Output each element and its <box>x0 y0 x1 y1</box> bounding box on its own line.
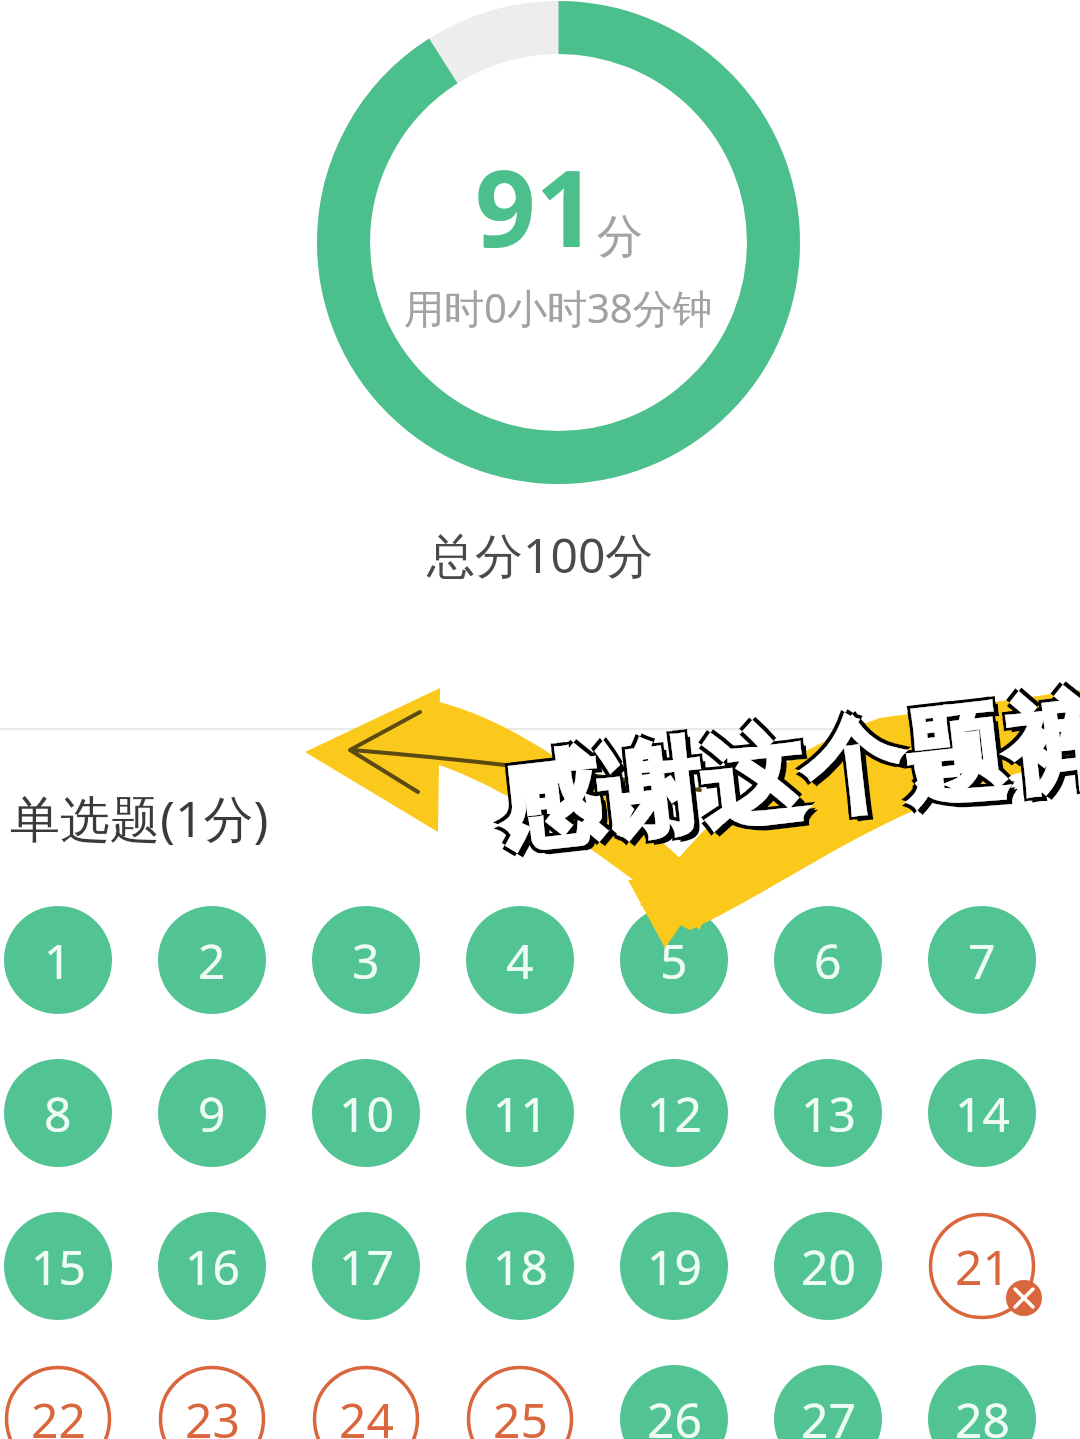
staticText: 5 <box>660 928 688 993</box>
staticText: 1 <box>44 928 72 993</box>
button[interactable]: 16 <box>158 1212 266 1320</box>
staticText: 6 <box>814 928 842 993</box>
button[interactable]: 3 <box>312 906 420 1014</box>
button[interactable]: 11 <box>466 1059 574 1167</box>
staticText: 17 <box>339 1234 394 1299</box>
button[interactable]: 7 <box>928 906 1036 1014</box>
staticText: 感谢这个题裤 <box>494 678 1080 875</box>
button[interactable]: 2 <box>158 906 266 1014</box>
staticText: 7 <box>968 928 996 993</box>
staticText: 20 <box>801 1234 856 1299</box>
staticText: 3 <box>352 928 380 993</box>
staticText: 22 <box>31 1387 86 1439</box>
staticText: 25 <box>493 1387 548 1439</box>
staticText: 8 <box>44 1081 72 1146</box>
staticText: 26 <box>647 1387 702 1439</box>
button[interactable]: 21 <box>928 1212 1036 1320</box>
staticText: 感谢这个题裤 <box>496 680 1080 877</box>
staticText: 21 <box>955 1234 1010 1299</box>
button[interactable]: 4 <box>466 906 574 1014</box>
staticText: 感谢这个题裤 <box>487 673 1080 870</box>
staticText: 27 <box>801 1387 856 1439</box>
button[interactable]: 25 <box>466 1365 574 1439</box>
staticText: 2 <box>198 928 226 993</box>
staticText: 单选题(1分) <box>10 784 269 852</box>
staticText: 11 <box>493 1081 548 1146</box>
button[interactable]: 26 <box>620 1365 728 1439</box>
button[interactable]: 19 <box>620 1212 728 1320</box>
staticText: 4 <box>506 928 534 993</box>
button[interactable]: 15 <box>4 1212 112 1320</box>
staticText: 12 <box>647 1081 702 1146</box>
button[interactable]: 9 <box>158 1059 266 1167</box>
staticText: 感谢这个题裤 <box>488 679 1080 876</box>
staticText: 分 <box>597 208 643 266</box>
button[interactable]: 27 <box>774 1365 882 1439</box>
button[interactable]: 23 <box>158 1365 266 1439</box>
staticText: 23 <box>185 1387 240 1439</box>
staticText: 9 <box>198 1081 226 1146</box>
staticText: 感谢这个题裤 <box>493 672 1080 869</box>
button[interactable]: 18 <box>466 1212 574 1320</box>
button[interactable]: 24 <box>312 1365 420 1439</box>
staticText: 感谢这个题裤 <box>491 676 1080 872</box>
button[interactable]: 8 <box>4 1059 112 1167</box>
button[interactable]: 12 <box>620 1059 728 1167</box>
staticText: 14 <box>955 1081 1010 1146</box>
staticText: 18 <box>493 1234 548 1299</box>
button[interactable]: 20 <box>774 1212 882 1320</box>
button[interactable]: 1 <box>4 906 112 1014</box>
button[interactable]: 10 <box>312 1059 420 1167</box>
button[interactable]: 13 <box>774 1059 882 1167</box>
other: Annotation arrow <box>0 0 1080 1439</box>
staticText: 13 <box>801 1081 856 1146</box>
button[interactable]: 14 <box>928 1059 1036 1167</box>
button[interactable]: 22 <box>4 1365 112 1439</box>
button[interactable]: 17 <box>312 1212 420 1320</box>
button[interactable]: 28 <box>928 1365 1036 1439</box>
staticText: 91 <box>475 134 597 278</box>
staticText: 10 <box>339 1081 394 1146</box>
staticText: 19 <box>647 1234 702 1299</box>
staticText: 28 <box>955 1387 1010 1439</box>
staticText: 16 <box>185 1234 240 1299</box>
staticText: 15 <box>31 1234 86 1299</box>
staticText: 用时0小时38分钟 <box>404 280 713 335</box>
staticText: 24 <box>339 1387 394 1439</box>
button[interactable]: 6 <box>774 906 882 1014</box>
button[interactable]: 5 <box>620 906 728 1014</box>
staticText: 总分100分 <box>427 522 654 588</box>
